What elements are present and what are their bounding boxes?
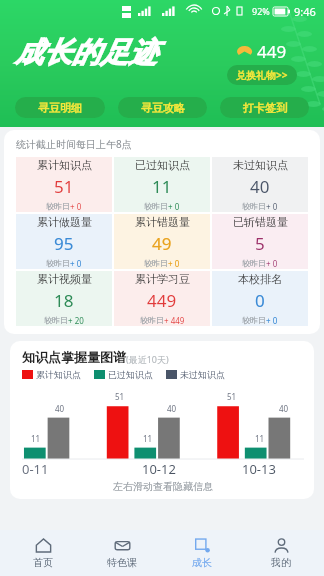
staticText: 已过知识点 <box>135 158 190 172</box>
staticText: (最近10天) <box>126 353 169 365</box>
staticText: 449 <box>257 40 287 63</box>
button[interactable]: 特色课 <box>85 530 159 576</box>
button[interactable]: 已斩错题量 <box>212 214 308 269</box>
staticText: 未过知识点 <box>180 369 225 380</box>
staticText: 统计截止时间每日上午8点 <box>16 137 132 151</box>
staticText: 18 <box>54 289 74 312</box>
button[interactable]: 寻豆攻略 <box>118 97 207 118</box>
staticText: 49 <box>152 232 172 255</box>
staticText: + 0 <box>168 258 180 269</box>
staticText: 10-12 <box>142 460 176 478</box>
button[interactable]: 累计视频量 <box>16 271 112 326</box>
staticText: 95 <box>54 232 74 255</box>
staticText: 累计视频量 <box>37 272 92 286</box>
staticText: 11 <box>31 433 41 444</box>
staticText: 首页 <box>33 556 53 569</box>
staticText: 较昨日 <box>46 201 70 211</box>
staticText: 51 <box>227 391 237 402</box>
staticText: 成长 <box>192 556 212 569</box>
staticText: 10-13 <box>242 460 276 478</box>
staticText: + 0 <box>266 315 278 326</box>
staticText: 9:46 <box>294 4 316 19</box>
staticText: + 0 <box>266 258 278 269</box>
staticText: 11 <box>143 433 153 444</box>
button[interactable]: 我的 <box>244 530 318 576</box>
staticText: 40 <box>167 403 177 414</box>
staticText: 已斩错题量 <box>233 215 288 229</box>
staticText: + 449 <box>164 315 185 326</box>
staticText: 5 <box>255 232 265 255</box>
staticText: + 20 <box>68 315 84 326</box>
staticText: 较昨日 <box>144 258 168 268</box>
staticText: 本校排名 <box>238 272 282 286</box>
staticText: 左右滑动查看隐藏信息 <box>22 480 304 493</box>
staticText: 较昨日 <box>144 201 168 211</box>
staticText: 92% <box>252 5 270 17</box>
staticText: 已过知识点 <box>108 369 153 380</box>
staticText: 我的 <box>271 556 291 569</box>
staticText: 寻豆攻略 <box>141 101 185 115</box>
button[interactable]: 兑换礼物>> <box>227 65 297 85</box>
staticText: 11 <box>255 433 265 444</box>
staticText: 知识点掌握量图谱 <box>22 349 126 365</box>
staticText: 较昨日 <box>46 258 70 268</box>
button[interactable]: 成长 <box>165 530 239 576</box>
button[interactable]: 首页 <box>6 530 80 576</box>
staticText: 51 <box>115 391 125 402</box>
staticText: 40 <box>279 403 289 414</box>
staticText: 累计知识点 <box>37 158 92 172</box>
staticText: 未过知识点 <box>233 158 288 172</box>
button[interactable]: 未过知识点 <box>212 157 308 212</box>
staticText: 51 <box>54 175 74 198</box>
staticText: 较昨日 <box>140 315 164 325</box>
button[interactable]: 累计学习豆 <box>114 271 210 326</box>
button[interactable]: 本校排名 <box>212 271 308 326</box>
staticText: 较昨日 <box>242 201 266 211</box>
button[interactable]: 已过知识点 <box>114 157 210 212</box>
button[interactable]: 累计做题量 <box>16 214 112 269</box>
button[interactable]: 累计知识点 <box>16 157 112 212</box>
staticText: 特色课 <box>107 556 137 569</box>
staticText: 较昨日 <box>44 315 68 325</box>
staticText: 较昨日 <box>242 315 266 325</box>
staticText: + 0 <box>70 201 82 212</box>
button[interactable]: 寻豆明细 <box>15 97 105 118</box>
staticText: 累计做题量 <box>37 215 92 229</box>
staticText: 累计错题量 <box>135 215 190 229</box>
staticText: 40 <box>55 403 65 414</box>
staticText: 累计学习豆 <box>135 272 190 286</box>
staticText: 40 <box>250 175 270 198</box>
button[interactable]: 累计错题量 <box>114 214 210 269</box>
staticText: 打卡签到 <box>243 101 287 115</box>
staticText: 成长的足迹 <box>15 35 158 70</box>
staticText: 0-11 <box>22 460 49 478</box>
staticText: 11 <box>152 175 172 198</box>
staticText: 累计知识点 <box>36 369 81 380</box>
staticText: + 0 <box>266 201 278 212</box>
button[interactable]: 打卡签到 <box>220 97 309 118</box>
staticText: 0 <box>255 289 265 312</box>
staticText: + 0 <box>168 201 180 212</box>
staticText: 寻豆明细 <box>38 101 82 115</box>
staticText: 较昨日 <box>242 258 266 268</box>
staticText: + 0 <box>70 258 82 269</box>
staticText: 兑换礼物>> <box>236 68 288 82</box>
staticText: 449 <box>147 289 177 312</box>
